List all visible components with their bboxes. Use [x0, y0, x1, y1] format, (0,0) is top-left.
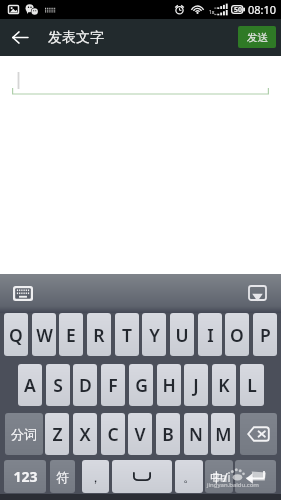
button[interactable]: G [129, 364, 153, 406]
button[interactable]: T [115, 313, 139, 356]
staticText: C [107, 422, 119, 446]
button[interactable]: H [157, 364, 181, 406]
staticText: V [134, 422, 146, 446]
staticText: L [247, 373, 257, 397]
button[interactable]: U [170, 313, 194, 356]
staticText: O [230, 323, 244, 347]
staticText: X [79, 422, 91, 446]
staticText: Bai [212, 469, 231, 485]
staticText: R [93, 323, 105, 347]
button[interactable]: R [87, 313, 111, 356]
button[interactable]: E [59, 313, 83, 356]
staticText: Q [9, 323, 23, 347]
staticText: F [108, 373, 118, 397]
button[interactable]: N [184, 413, 208, 455]
button[interactable]: X [73, 413, 97, 455]
button[interactable]: F [101, 364, 125, 406]
button[interactable]: Switch keyboard layout [11, 285, 35, 301]
staticText: Y [149, 323, 160, 347]
button[interactable]: J [184, 364, 208, 406]
button[interactable]: 中/ [205, 460, 233, 493]
staticText: 08:10 [248, 2, 277, 17]
button[interactable]: ， [82, 460, 109, 493]
staticText: N [189, 422, 203, 446]
button[interactable]: O [225, 313, 249, 356]
staticText: 符 [56, 469, 69, 485]
staticText: 发送 [247, 31, 268, 44]
button[interactable]: 符 [50, 460, 75, 493]
button[interactable]: I [198, 313, 222, 356]
staticText: A [24, 373, 36, 397]
staticText: U [175, 323, 189, 347]
button[interactable]: 123 [4, 460, 46, 493]
staticText: 1x [209, 9, 215, 16]
staticText: E [66, 323, 76, 347]
staticText: P [260, 323, 271, 347]
button[interactable]: 发送 [238, 26, 276, 48]
staticText: B [162, 422, 174, 446]
staticText: M [215, 422, 232, 446]
button[interactable]: A [18, 364, 42, 406]
button[interactable]: D [73, 364, 97, 406]
button[interactable]: Q [4, 313, 28, 356]
button[interactable]: C [101, 413, 125, 455]
staticText: I [207, 323, 214, 347]
button[interactable]: Y [142, 313, 166, 356]
staticText: T [122, 323, 132, 347]
staticText: Z [52, 422, 63, 446]
button[interactable]: M [211, 413, 235, 455]
staticText: 分词 [11, 426, 37, 442]
staticText: S [53, 373, 63, 397]
staticText: 发表文字 [48, 29, 104, 47]
button[interactable]: V [128, 413, 152, 455]
staticText: K [218, 373, 230, 397]
staticText: ， [89, 469, 102, 485]
button[interactable]: 分词 [5, 413, 43, 455]
button[interactable]: Hide keyboard [245, 284, 269, 302]
button[interactable]: Z [45, 413, 69, 455]
staticText: jingyan.baidu.com [207, 481, 259, 489]
button[interactable]: L [240, 364, 264, 406]
staticText: 中/ [210, 468, 228, 486]
staticText: G [135, 373, 148, 397]
staticText: 123 [13, 467, 38, 486]
button[interactable]: P [253, 313, 277, 356]
button[interactable]: K [212, 364, 236, 406]
staticText: H [162, 373, 176, 397]
button[interactable]: W [32, 313, 56, 356]
staticText: W [36, 323, 53, 347]
staticText: 50 [234, 5, 243, 14]
button[interactable]: Enter [235, 460, 276, 493]
staticText: D [79, 373, 92, 397]
button[interactable]: 。 [175, 460, 203, 493]
button[interactable]: Space [112, 460, 172, 493]
button[interactable]: Back [0, 19, 40, 56]
button[interactable]: B [156, 413, 180, 455]
staticText: 。 [183, 469, 196, 485]
staticText: J [193, 373, 199, 397]
button[interactable]: Delete [240, 413, 277, 455]
button[interactable]: S [46, 364, 70, 406]
